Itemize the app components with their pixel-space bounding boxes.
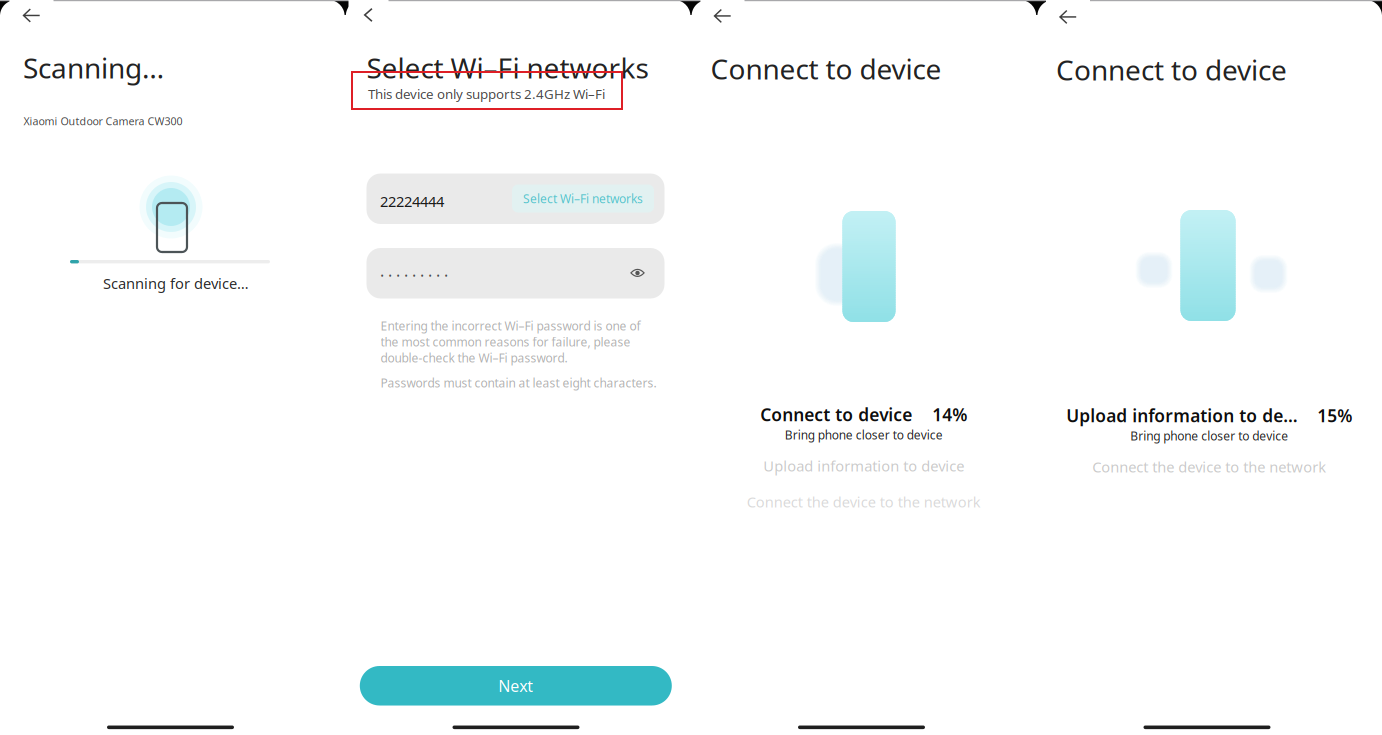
staticText: Next — [498, 675, 533, 696]
button[interactable]: Back — [1046, 0, 1090, 37]
staticText: Connect the device to the network — [1092, 457, 1326, 476]
staticText: Passwords must contain at least eight ch… — [380, 375, 656, 391]
staticText: Scanning for device… — [103, 273, 249, 293]
button[interactable]: Show password — [624, 260, 650, 286]
button[interactable]: Back — [9, 0, 53, 35]
staticText: 22224444 — [380, 191, 444, 211]
staticText: Scanning… — [23, 49, 164, 86]
staticText: Connect to device — [710, 50, 941, 87]
staticText: Bring phone closer to device — [1130, 428, 1288, 444]
staticText: Entering the incorrect Wi–Fi password is… — [380, 318, 640, 366]
staticText: Bring phone closer to device — [785, 427, 943, 443]
staticText: · · · · · · · · · — [380, 265, 448, 286]
staticText: Connect the device to the network — [747, 492, 981, 511]
staticText: 14% — [932, 403, 967, 426]
staticText: Connect to device — [1056, 51, 1287, 88]
staticText: Connect to device — [760, 403, 912, 426]
staticText: Xiaomi Outdoor Camera CW300 — [23, 114, 182, 128]
button[interactable]: Back — [348, 0, 388, 35]
button[interactable]: Select Wi–Fi networks — [512, 184, 654, 212]
staticText: Upload information to device — [763, 456, 964, 475]
staticText: Upload information to de… — [1066, 404, 1297, 427]
staticText: This device only supports 2.4GHz Wi–Fi — [368, 85, 605, 103]
button[interactable]: Back — [700, 0, 744, 36]
staticText: Select Wi–Fi networks — [523, 190, 643, 206]
staticText: 15% — [1317, 404, 1352, 427]
button[interactable]: Next — [360, 666, 672, 705]
staticText: Select Wi–Fi networks — [366, 49, 648, 86]
